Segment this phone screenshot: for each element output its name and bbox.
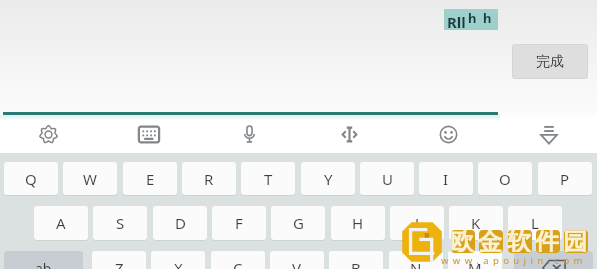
button[interactable]: T [241,162,295,195]
button[interactable]: W [63,162,117,195]
button[interactable]: Hide keyboard [527,115,571,153]
staticText: www.apoujin.com [441,254,587,267]
staticText: W [83,169,97,189]
button[interactable]: J [390,206,444,240]
button[interactable]: G [271,206,325,240]
staticText: K [471,213,481,233]
staticText: M [468,258,482,269]
button[interactable]: N [389,251,443,269]
button[interactable]: Move cursor [327,115,371,153]
button[interactable]: Y [301,162,355,195]
button[interactable]: S [93,206,147,240]
staticText: Q [25,169,37,189]
staticText: U [382,169,393,189]
staticText: C [233,258,243,269]
button[interactable]: P [538,162,592,195]
button[interactable]: M [448,251,502,269]
button[interactable]: I [419,162,473,195]
button[interactable]: Q [4,162,58,195]
button[interactable]: D [153,206,207,240]
staticText: ab [35,259,52,269]
staticText: E [146,169,155,189]
button[interactable]: Backspace [514,251,593,269]
staticText: B [351,258,361,269]
staticText: Rll [447,12,466,32]
button[interactable]: X [151,251,205,269]
button[interactable]: K [449,206,503,240]
button[interactable]: F [212,206,266,240]
staticText: h [468,9,477,27]
staticText: X [174,258,183,269]
button[interactable]: Keyboard layout [127,115,171,153]
staticText: G [293,213,304,233]
staticText: 金 [478,227,502,252]
button[interactable]: L [508,206,562,240]
button[interactable]: O [478,162,532,195]
button[interactable]: Voice input [227,115,271,153]
staticText: A [56,213,66,233]
staticText: Y [324,169,333,189]
staticText: 软 [507,227,531,252]
staticText: O [499,169,511,189]
button[interactable]: V [270,251,324,269]
staticText: 园 [563,227,587,252]
staticText: T [264,169,273,189]
button[interactable]: ab [4,251,83,269]
staticText: 完成 [536,53,564,71]
staticText: Z [115,258,124,269]
button[interactable]: U [360,162,414,195]
button[interactable]: 完成 [512,44,588,79]
staticText: h [483,9,492,27]
button[interactable]: E [123,162,177,195]
staticText: S [116,213,125,233]
button[interactable]: R [182,162,236,195]
staticText: H [352,213,364,233]
button[interactable]: C [211,251,265,269]
button[interactable]: A [34,206,88,240]
button[interactable]: Z [92,251,146,269]
button[interactable]: Settings [26,115,70,153]
staticText: 欧 [450,227,474,252]
button[interactable]: B [329,251,383,269]
staticText: 件 [535,227,559,252]
staticText: J [415,213,420,233]
staticText: P [560,169,570,189]
staticText: F [235,213,243,233]
button[interactable]: Emoji [426,115,470,153]
staticText: I [443,169,449,189]
staticText: R [204,169,214,189]
button[interactable]: H [331,206,385,240]
staticText: D [175,213,186,233]
staticText: N [410,258,422,269]
staticText: V [292,258,302,269]
staticText: L [531,213,539,233]
